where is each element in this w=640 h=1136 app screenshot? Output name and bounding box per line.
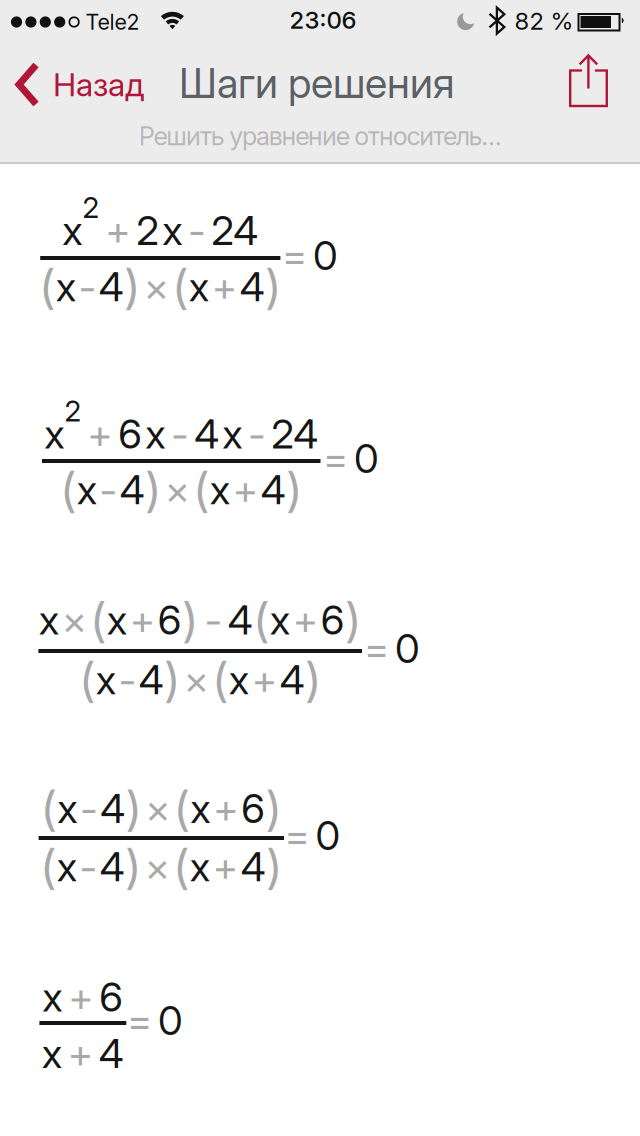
staticText: 4 xyxy=(120,465,145,514)
staticText: ( xyxy=(173,838,190,895)
staticText: x xyxy=(190,842,210,891)
staticText: 0 xyxy=(348,434,379,483)
staticText: x xyxy=(229,655,249,704)
staticText: x xyxy=(42,1029,62,1078)
staticText: 24 xyxy=(211,206,258,255)
staticText: ) xyxy=(266,838,283,895)
staticText: × xyxy=(142,784,173,833)
staticText: ) xyxy=(286,461,303,518)
staticText: 0 xyxy=(389,624,420,673)
staticText: + xyxy=(99,206,136,255)
staticText: + xyxy=(62,973,99,1021)
staticText: x xyxy=(190,784,210,833)
staticText: ) xyxy=(125,838,142,895)
staticText: + xyxy=(209,262,240,311)
staticText: ( xyxy=(172,258,189,315)
staticText: = xyxy=(364,624,389,673)
staticText: 4 xyxy=(280,655,305,704)
staticText: 4 xyxy=(100,784,125,833)
staticText: ( xyxy=(40,780,57,837)
staticText: = xyxy=(282,231,307,280)
staticText: + xyxy=(210,842,241,891)
staticText: + xyxy=(210,784,241,833)
staticText: = xyxy=(284,811,309,860)
staticText: x xyxy=(42,973,62,1021)
staticText: Tele2 xyxy=(85,9,139,35)
staticText: + xyxy=(249,655,280,704)
staticText: Назад xyxy=(53,65,144,104)
staticText: x xyxy=(57,784,77,833)
staticText: - xyxy=(182,206,211,255)
staticText: 0 xyxy=(309,811,340,860)
staticText: x xyxy=(62,206,82,255)
staticText: ( xyxy=(90,592,107,648)
staticText: 4 xyxy=(241,842,266,891)
staticText: ) xyxy=(145,461,162,518)
staticText: × xyxy=(141,262,172,311)
staticText: x xyxy=(44,410,64,458)
staticText: × xyxy=(162,465,193,514)
staticText: x xyxy=(57,842,77,891)
staticText: x xyxy=(96,655,116,704)
staticText: x xyxy=(270,596,290,644)
staticText: 4 x xyxy=(194,410,242,458)
staticText: 4 xyxy=(99,262,124,311)
staticText: - xyxy=(242,410,271,458)
staticText: ( xyxy=(212,651,229,708)
staticText: 6 xyxy=(321,596,345,644)
button[interactable]: Share xyxy=(569,53,609,108)
staticText: x xyxy=(56,262,76,311)
staticText: × xyxy=(142,842,173,891)
button[interactable]: Назад xyxy=(19,65,144,104)
staticText: 4 xyxy=(99,1029,124,1078)
staticText: = xyxy=(323,434,348,483)
staticText: 2 xyxy=(64,393,81,428)
staticText: × xyxy=(181,655,212,704)
staticText: + xyxy=(290,596,321,644)
staticText: - xyxy=(77,842,100,891)
staticText: + xyxy=(127,596,158,644)
staticText: x xyxy=(107,596,127,644)
staticText: 6 xyxy=(99,973,123,1021)
staticText: - xyxy=(165,410,194,458)
staticText: 0 xyxy=(307,231,338,280)
staticText: ) xyxy=(265,780,282,837)
staticText: + xyxy=(81,410,118,458)
staticText: x xyxy=(77,465,97,514)
staticText: ( xyxy=(60,461,77,518)
staticText: ( xyxy=(173,780,190,837)
staticText: 6 x xyxy=(118,410,165,458)
staticText: ) xyxy=(164,651,181,708)
staticText: - xyxy=(116,655,139,704)
staticText: ) xyxy=(305,651,322,708)
staticText: 23:06 xyxy=(289,5,356,34)
staticText: 0 xyxy=(152,996,183,1045)
staticText: - xyxy=(97,465,120,514)
staticText: 2 x xyxy=(136,206,182,255)
staticText: 2 xyxy=(82,190,99,225)
staticText: ) xyxy=(125,780,142,837)
staticText: ( xyxy=(40,838,57,895)
staticText: Шаги решения xyxy=(179,58,455,108)
staticText: × xyxy=(59,596,90,644)
staticText: 6 xyxy=(158,596,182,644)
staticText: ( xyxy=(39,258,56,315)
staticText: 4 xyxy=(100,842,125,891)
staticText: ( xyxy=(253,592,270,648)
staticText: 4 xyxy=(240,262,265,311)
staticText: 82 % xyxy=(514,6,573,35)
staticText: = xyxy=(127,996,152,1045)
staticText: + xyxy=(230,465,261,514)
staticText: - xyxy=(77,784,100,833)
staticText: ( xyxy=(193,461,210,518)
staticText: 6 xyxy=(241,784,265,833)
staticText: 4 xyxy=(139,655,164,704)
staticText: x xyxy=(189,262,209,311)
staticText: Решить уравнение относитель… xyxy=(139,121,501,151)
staticText: + xyxy=(62,1029,99,1078)
staticText: 4 xyxy=(228,596,253,644)
staticText: ) xyxy=(182,592,199,648)
staticText: - xyxy=(76,262,99,311)
staticText: ) xyxy=(124,258,141,315)
staticText: 4 xyxy=(261,465,286,514)
